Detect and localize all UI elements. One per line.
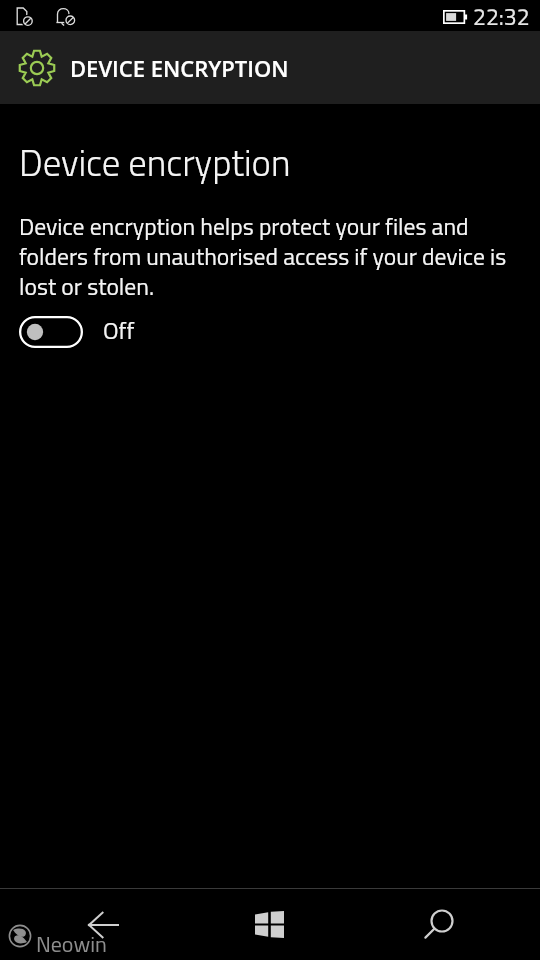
other: Screenshot blocked [16, 7, 32, 26]
staticText: Device encryption helps protect your fil… [19, 213, 518, 303]
staticText: DEVICE ENCRYPTION [70, 53, 289, 83]
button[interactable]: Back [0, 889, 180, 960]
button[interactable]: Off [19, 314, 135, 350]
staticText: 22:32 [473, 0, 530, 30]
button[interactable]: DEVICE ENCRYPTION [0, 31, 540, 104]
staticText: Device encryption [19, 134, 291, 190]
staticText: Neowin [36, 927, 107, 960]
button[interactable]: Start [180, 889, 360, 960]
other: Notifications silenced [56, 7, 74, 26]
button[interactable]: Search [360, 889, 540, 960]
staticText: Off [103, 312, 135, 348]
